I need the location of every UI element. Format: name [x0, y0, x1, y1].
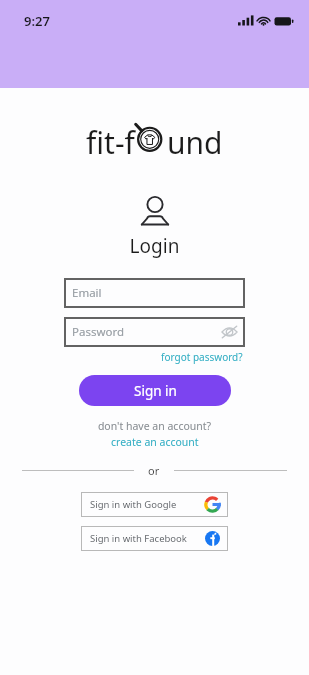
staticText: Login — [0, 233, 309, 259]
staticText: Password — [72, 324, 125, 340]
button[interactable]: Show password — [220, 323, 238, 341]
button[interactable]: Sign in with Google — [81, 492, 228, 517]
staticText: create an account — [111, 435, 199, 449]
staticText: und — [167, 122, 223, 163]
staticText: Sign in with Google — [90, 498, 177, 511]
staticText: 9:27 — [24, 12, 50, 30]
staticText: or — [148, 463, 160, 478]
button[interactable]: create an account — [111, 435, 199, 449]
staticText: don't have an account? — [0, 419, 309, 433]
staticText: Email — [72, 285, 102, 301]
button[interactable]: Sign in — [79, 375, 231, 406]
staticText: fit-f — [86, 122, 135, 163]
button[interactable]: forgot password? — [161, 350, 243, 364]
button[interactable]: Sign in with Facebook — [81, 526, 228, 551]
staticText: Sign in with Facebook — [90, 532, 187, 545]
button[interactable]: Password — [64, 317, 245, 347]
button[interactable]: Email — [64, 278, 245, 308]
staticText: Sign in — [134, 382, 177, 400]
staticText: forgot password? — [161, 350, 243, 364]
